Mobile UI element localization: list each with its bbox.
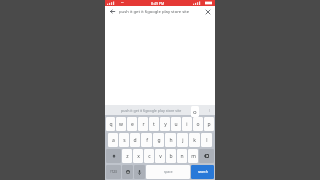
button[interactable]: More suggestions — [205, 106, 213, 114]
staticText: c — [148, 153, 151, 160]
staticText: l — [206, 137, 208, 144]
button[interactable]: Voice input — [134, 165, 145, 179]
staticText: g — [157, 137, 161, 144]
staticText: d — [133, 137, 137, 144]
staticText: m — [191, 153, 196, 160]
staticText: b — [169, 153, 173, 160]
staticText: n — [180, 153, 184, 160]
staticText: z — [126, 153, 129, 160]
staticText: j — [182, 137, 184, 144]
button[interactable]: o — [193, 117, 203, 131]
button[interactable]: u — [171, 117, 181, 131]
button[interactable]: q — [106, 117, 115, 131]
button[interactable]: n — [177, 149, 187, 163]
button[interactable]: Shift — [106, 149, 121, 163]
staticText: o — [196, 121, 200, 128]
button[interactable]: b — [166, 149, 176, 163]
staticText: t — [153, 121, 155, 128]
staticText: q — [109, 121, 113, 128]
staticText: space — [164, 170, 173, 174]
staticText: 8:49 PM — [151, 1, 165, 6]
button[interactable]: e — [127, 117, 137, 131]
button[interactable]: Backspace — [199, 149, 214, 163]
staticText: k — [193, 137, 196, 144]
button[interactable]: d — [130, 133, 140, 147]
button[interactable]: ?123 — [106, 165, 121, 179]
staticText: u — [174, 121, 178, 128]
button[interactable]: f — [141, 133, 152, 147]
staticText: s — [123, 137, 126, 144]
button[interactable]: h — [165, 133, 176, 147]
staticText: p — [207, 121, 211, 128]
button[interactable]: v — [155, 149, 165, 163]
staticText: w — [119, 121, 123, 128]
button[interactable]: y — [160, 117, 170, 131]
button[interactable]: g — [153, 133, 164, 147]
staticText: e — [131, 121, 134, 128]
button[interactable]: t — [149, 117, 159, 131]
button[interactable]: push it get it 6google play store site — [119, 6, 202, 17]
button[interactable]: a — [108, 133, 118, 147]
button[interactable]: p — [204, 117, 214, 131]
button[interactable]: l — [201, 133, 212, 147]
button[interactable]: space — [146, 165, 190, 179]
button[interactable]: m — [188, 149, 198, 163]
button[interactable]: z — [122, 149, 132, 163]
button[interactable]: j — [177, 133, 188, 147]
staticText: o — [193, 108, 197, 116]
button[interactable]: Clear search — [203, 7, 212, 16]
button[interactable]: c — [144, 149, 154, 163]
button[interactable]: r — [138, 117, 148, 131]
button[interactable]: s — [119, 133, 129, 147]
staticText: r — [142, 121, 145, 128]
staticText: f — [146, 137, 148, 144]
button[interactable]: x — [133, 149, 143, 163]
button[interactable]: search — [191, 165, 214, 179]
button[interactable]: k — [189, 133, 200, 147]
staticText: i — [186, 121, 188, 128]
staticText: push it get it 6google play store site — [121, 108, 182, 113]
staticText: x — [137, 153, 140, 160]
button[interactable]: i — [182, 117, 192, 131]
button[interactable]: Emoji — [122, 165, 133, 179]
staticText: ?123 — [110, 170, 117, 174]
staticText: search — [198, 170, 208, 174]
staticText: v — [159, 153, 162, 160]
staticText: h — [169, 137, 173, 144]
staticText: a — [112, 137, 115, 144]
staticText: push it get it 6google play store site — [119, 9, 190, 15]
staticText: y — [164, 121, 167, 128]
button[interactable]: Back — [108, 7, 117, 16]
button[interactable]: w — [116, 117, 126, 131]
staticText: ᵃᵐ — [121, 1, 124, 5]
button[interactable]: push it get it 6google play store site — [107, 105, 195, 115]
